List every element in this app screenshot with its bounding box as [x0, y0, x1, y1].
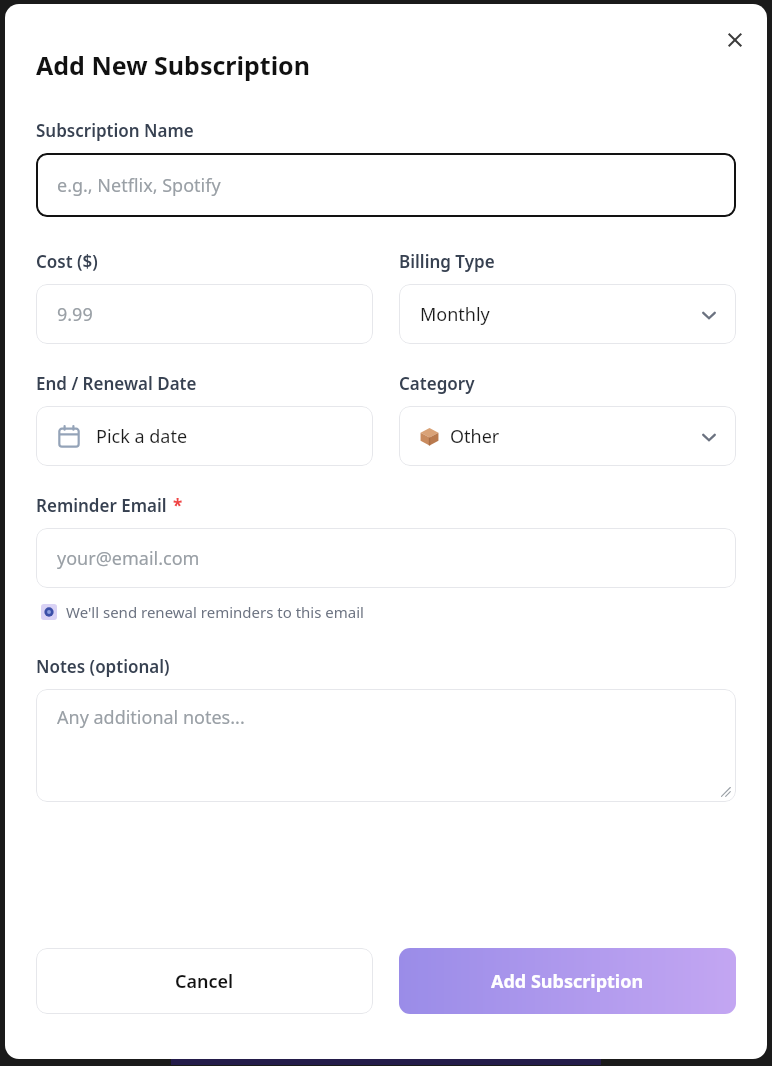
staticText: Monthly — [420, 302, 700, 327]
staticText: your@email.com — [57, 546, 200, 571]
staticText: Cancel — [175, 969, 234, 994]
button[interactable]: e.g., Netflix, Spotify — [36, 153, 736, 217]
staticText: End / Renewal Date — [36, 372, 197, 395]
button[interactable]: Other — [399, 406, 736, 466]
staticText: Subscription Name — [36, 119, 194, 142]
staticText: Cost ($) — [36, 250, 98, 273]
button[interactable]: Close — [715, 20, 755, 60]
staticText: e.g., Netflix, Spotify — [57, 173, 221, 198]
staticText: Add New Subscription — [36, 48, 310, 82]
button[interactable]: 9.99 — [36, 284, 373, 344]
staticText: Category — [399, 372, 475, 395]
staticText: Reminder Email — [36, 494, 167, 517]
staticText: We'll send renewal reminders to this ema… — [66, 602, 364, 622]
staticText: 9.99 — [57, 302, 93, 327]
staticText: Pick a date — [96, 424, 188, 449]
button[interactable]: Monthly — [399, 284, 736, 344]
button[interactable]: Add Subscription — [399, 948, 736, 1014]
button[interactable]: Any additional notes... — [36, 689, 736, 802]
button[interactable]: your@email.com — [36, 528, 736, 588]
staticText: Billing Type — [399, 250, 495, 273]
staticText: * — [173, 494, 183, 517]
staticText: Other — [450, 424, 700, 449]
staticText: Add Subscription — [491, 969, 644, 994]
staticText: Notes (optional) — [36, 655, 170, 678]
button[interactable]: Pick a date — [36, 406, 373, 466]
button[interactable]: Cancel — [36, 948, 373, 1014]
staticText: Any additional notes... — [57, 705, 245, 730]
